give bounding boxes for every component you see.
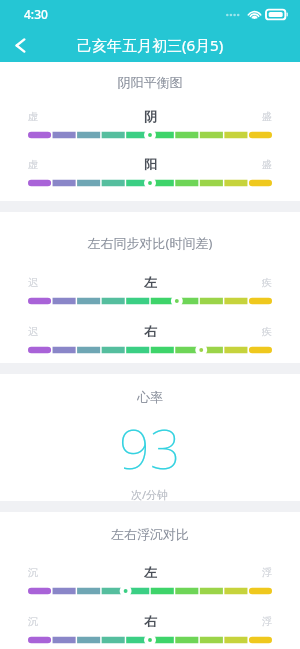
staticText: 阴 (144, 108, 157, 124)
button[interactable]: Back (0, 28, 40, 62)
staticText: 93 (119, 411, 181, 485)
button[interactable] (28, 129, 272, 141)
staticText: 疾 (262, 325, 272, 338)
staticText: 右 (144, 613, 157, 629)
staticText: 虚 (28, 158, 38, 171)
staticText: 疾 (262, 276, 272, 289)
staticText: 阴阳平衡图 (0, 74, 300, 90)
button[interactable] (28, 177, 272, 189)
button[interactable] (28, 295, 272, 307)
staticText: 迟 (28, 325, 38, 338)
staticText: 沉 (28, 615, 38, 628)
staticText: 浮 (262, 615, 272, 628)
staticText: 左 (144, 274, 157, 290)
staticText: 盛 (262, 110, 272, 123)
button[interactable] (28, 344, 272, 356)
staticText: 迟 (28, 276, 38, 289)
staticText: 4:30 (24, 6, 48, 22)
staticText: 己亥年五月初三(6月5) (77, 35, 224, 55)
button[interactable] (28, 585, 272, 597)
staticText: 左右浮沉对比 (0, 526, 300, 542)
staticText: 次/分钟 (131, 487, 169, 501)
staticText: 右 (144, 323, 157, 339)
staticText: 虚 (28, 110, 38, 123)
staticText: 沉 (28, 566, 38, 579)
staticText: 阳 (144, 156, 157, 172)
button[interactable] (28, 634, 272, 646)
staticText: 盛 (262, 158, 272, 171)
staticText: 左右同步对比(时间差) (0, 234, 300, 252)
staticText: 心率 (0, 389, 300, 405)
staticText: 浮 (262, 566, 272, 579)
staticText: 左 (144, 564, 157, 580)
